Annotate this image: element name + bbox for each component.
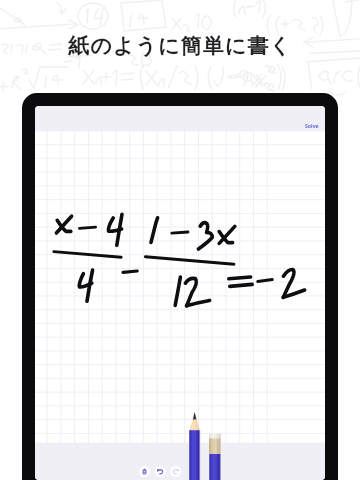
button[interactable]: Eraser xyxy=(139,466,150,477)
button[interactable]: Solve xyxy=(305,122,319,129)
staticText: 紙のように簡単に書く xyxy=(68,33,292,59)
button[interactable]: Undo xyxy=(155,466,166,477)
staticText: Solve xyxy=(305,122,319,129)
button[interactable]: Redo xyxy=(170,466,181,477)
